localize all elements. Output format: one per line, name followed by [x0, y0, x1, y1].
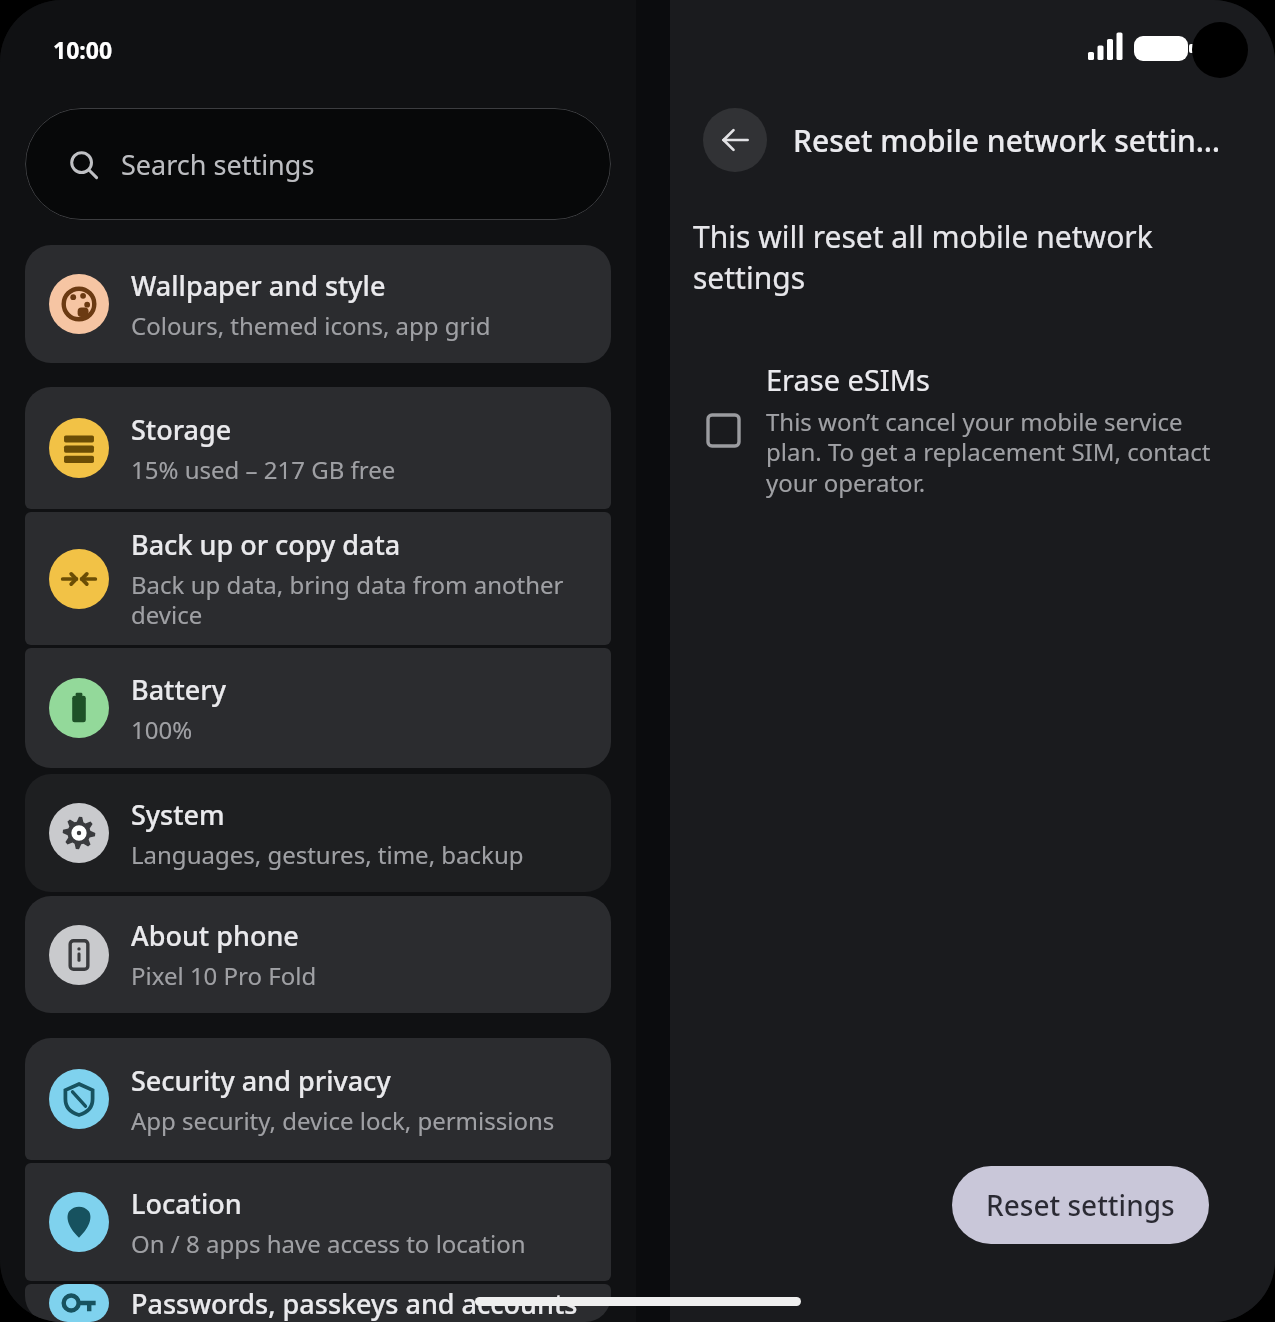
button[interactable]: About phone [25, 896, 611, 1013]
staticText: 15% used – 217 GB free [131, 453, 396, 486]
staticText: Pixel 10 Pro Fold [131, 959, 317, 992]
staticText: Erase eSIMs [766, 360, 930, 399]
button[interactable]: Wallpaper and style [25, 245, 611, 363]
button[interactable]: Security and privacy [25, 1038, 611, 1160]
staticText: 10:00 [53, 34, 113, 65]
button[interactable]: Erase eSIMs [670, 352, 1275, 507]
staticText: Location [131, 1185, 242, 1222]
button[interactable]: Storage [25, 387, 611, 509]
staticText: Languages, gestures, time, backup [131, 838, 524, 871]
staticText: Security and privacy [131, 1062, 391, 1099]
staticText: On / 8 apps have access to location [131, 1227, 526, 1260]
staticText: Battery [131, 671, 226, 708]
staticText: This will reset all mobile network setti… [693, 216, 1252, 298]
staticText: Search settings [121, 146, 315, 183]
staticText: System [131, 796, 225, 833]
staticText: Back up data, bring data from another de… [131, 568, 593, 631]
button[interactable]: Battery [25, 648, 611, 768]
staticText: About phone [131, 917, 299, 954]
staticText: Back up or copy data [131, 526, 401, 563]
button[interactable]: Back [703, 108, 767, 172]
staticText: Storage [131, 411, 232, 448]
button[interactable]: Back up or copy data [25, 512, 611, 645]
staticText: Reset settings [986, 1186, 1175, 1224]
staticText: App security, device lock, permissions [131, 1104, 555, 1137]
staticText: Wallpaper and style [131, 267, 386, 304]
staticText: Reset mobile network settin… [793, 120, 1221, 161]
button[interactable]: Passwords, passkeys and accounts [25, 1284, 611, 1322]
button[interactable]: Reset settings [952, 1166, 1209, 1244]
button[interactable]: System [25, 774, 611, 892]
staticText: 100% [131, 713, 193, 746]
staticText: This won’t cancel your mobile service pl… [766, 405, 1239, 499]
button[interactable]: Search settings [25, 108, 611, 220]
staticText: Colours, themed icons, app grid [131, 309, 491, 342]
staticText: Passwords, passkeys and accounts [131, 1285, 578, 1322]
button[interactable]: Location [25, 1163, 611, 1281]
